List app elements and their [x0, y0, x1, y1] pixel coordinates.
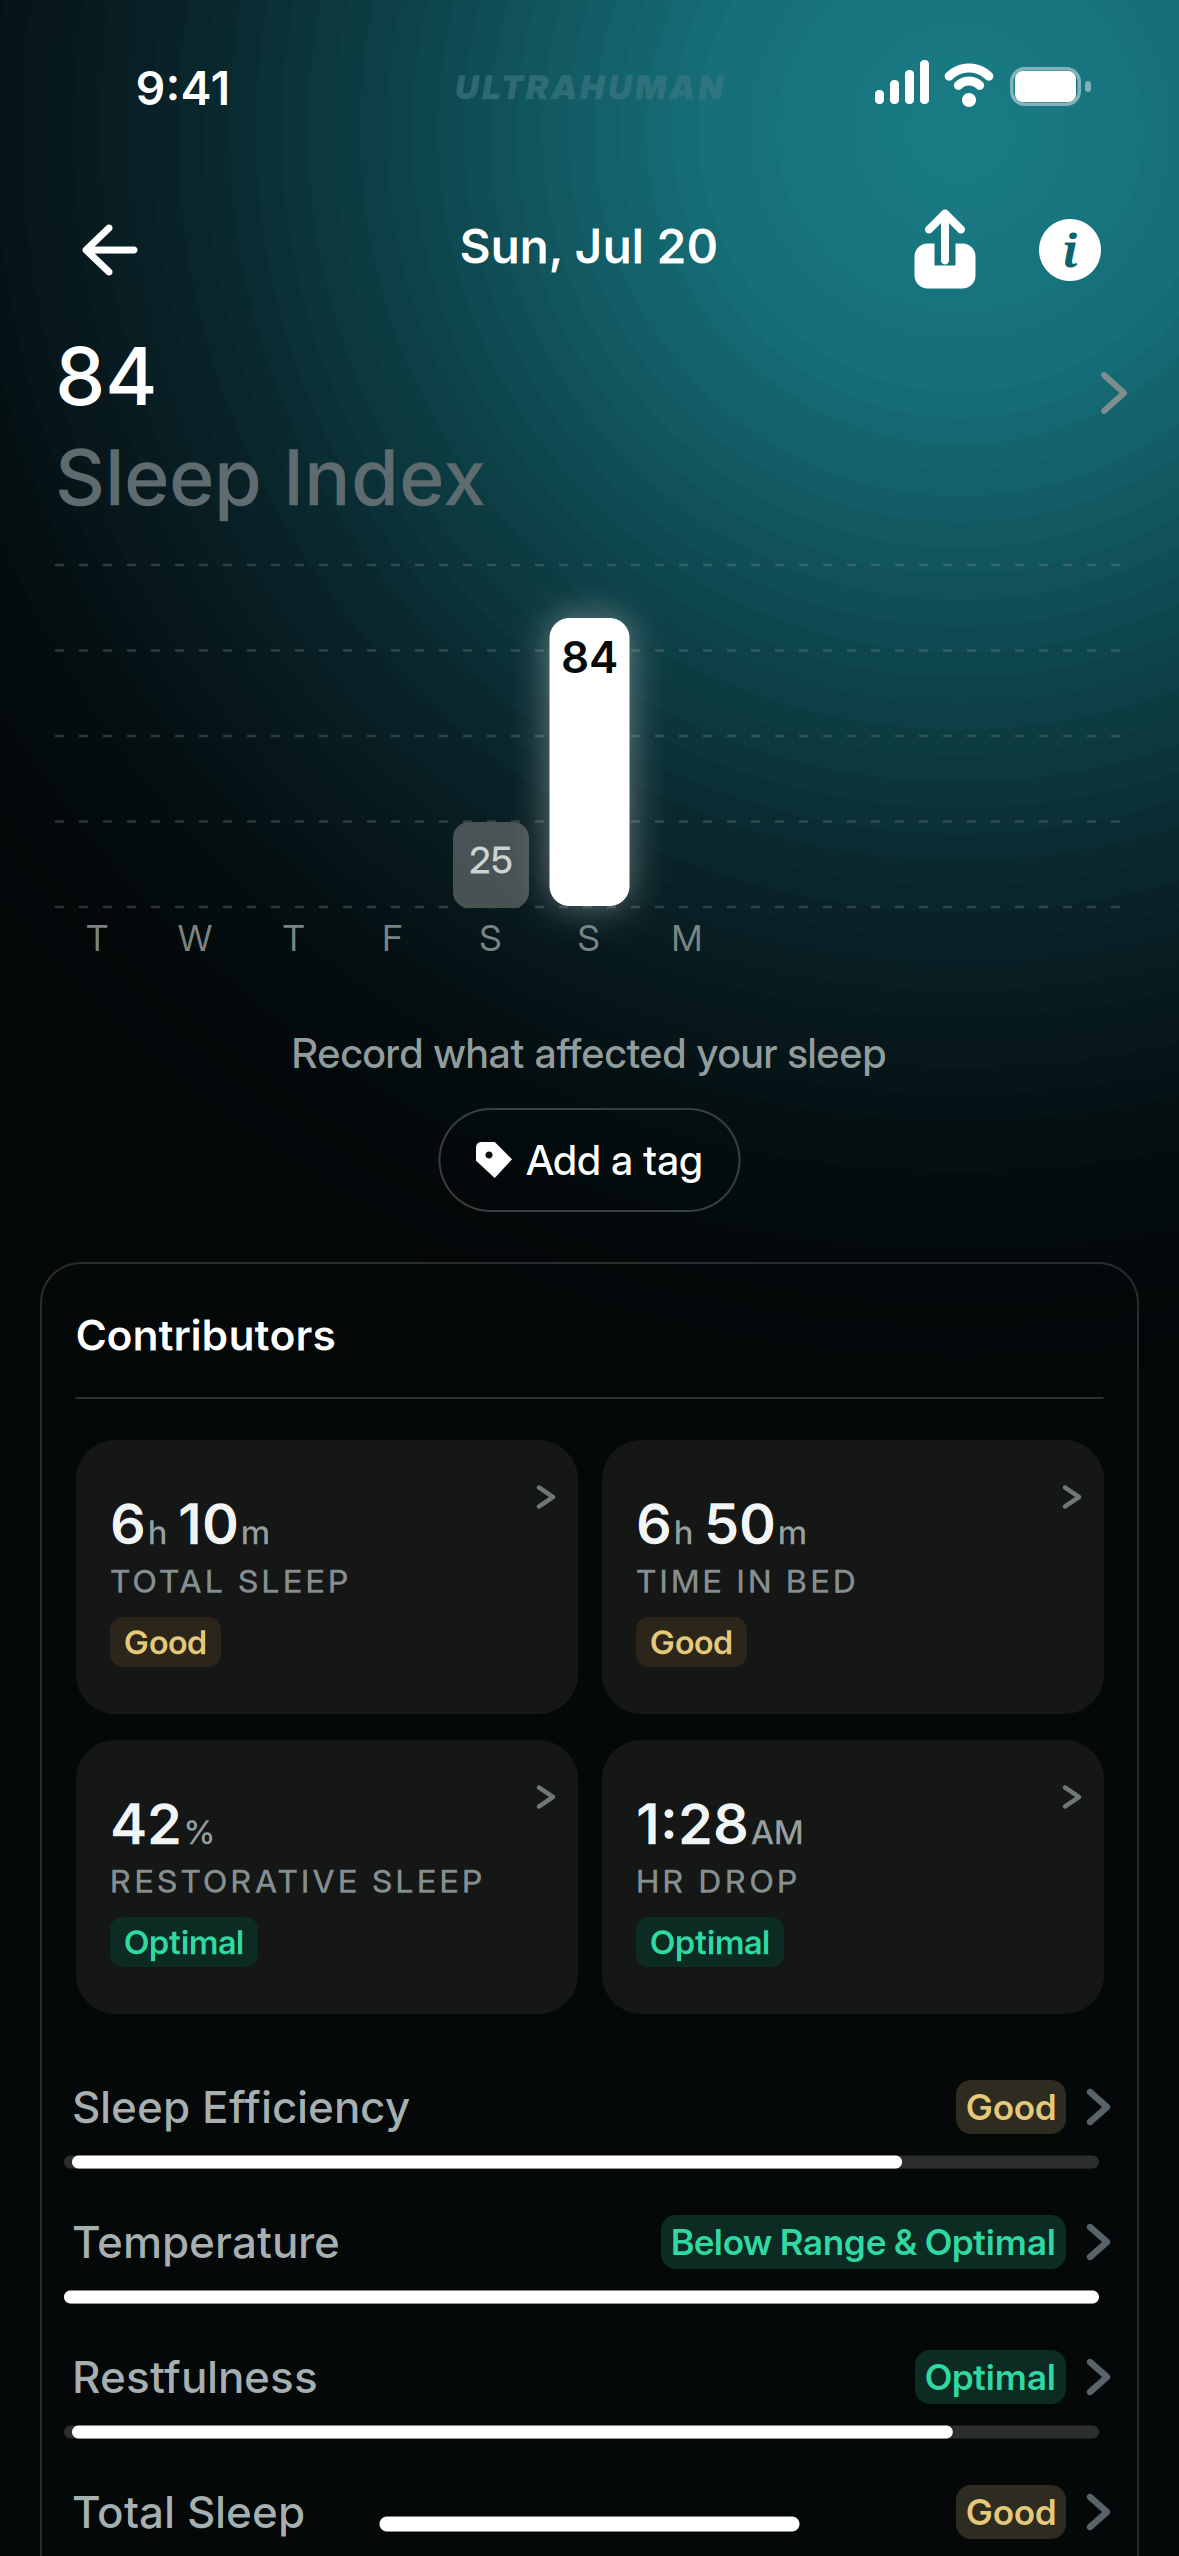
button[interactable]: Restfulness [72, 2337, 1107, 2417]
staticText: S [577, 917, 599, 959]
staticText: Good [966, 2086, 1056, 2128]
button[interactable] [914, 211, 976, 288]
staticText: T [86, 917, 108, 959]
staticText: F [382, 917, 402, 959]
staticText: Good [966, 2491, 1056, 2533]
button[interactable]: 84 [0, 295, 1179, 555]
button[interactable]: 6 [602, 1440, 1104, 1714]
staticText: 84 [561, 631, 618, 683]
button[interactable]: Temperature [72, 2202, 1107, 2282]
staticText: h [148, 1513, 167, 1552]
staticText: 6 [636, 1491, 672, 1557]
staticText: TIME IN BED [636, 1562, 856, 1600]
staticText: % [184, 1813, 215, 1852]
staticText: AM [751, 1813, 804, 1852]
button[interactable]: Sleep Efficiency [72, 2067, 1107, 2147]
staticText: S [479, 917, 501, 959]
staticText: m [778, 1513, 807, 1552]
button[interactable]: Add a tag [438, 1108, 740, 1212]
staticText: Optimal [650, 1922, 770, 1962]
button[interactable]: 6 [76, 1440, 578, 1714]
staticText: Sun, Jul 20 [459, 218, 718, 274]
staticText: Add a tag [526, 1136, 703, 1184]
staticText: Good [650, 1622, 733, 1662]
staticText: Sleep Efficiency [72, 2081, 410, 2133]
staticText: 10 [178, 1491, 239, 1557]
staticText: h [674, 1513, 693, 1552]
staticText: i [1062, 219, 1078, 281]
staticText: Optimal [124, 1922, 244, 1962]
staticText: m [241, 1513, 270, 1552]
staticText: 1:28 [636, 1791, 749, 1857]
staticText: Below Range & Optimal [671, 2221, 1056, 2263]
staticText: 42 [110, 1791, 182, 1857]
staticText: 6 [110, 1491, 146, 1557]
staticText: RESTORATIVE SLEEP [110, 1862, 482, 1900]
staticText: M [671, 917, 702, 959]
staticText: Good [124, 1622, 207, 1662]
staticText: 50 [704, 1491, 776, 1557]
staticText: ULTRAHUMAN [455, 67, 723, 107]
staticText: Restfulness [72, 2351, 318, 2403]
staticText: W [178, 917, 213, 959]
staticText: Contributors [75, 1310, 335, 1360]
staticText: HR DROP [636, 1862, 797, 1900]
staticText: 84 [55, 329, 158, 423]
staticText: Sleep Index [55, 431, 486, 523]
staticText: 25 [469, 838, 513, 882]
staticText: T [283, 917, 305, 959]
button[interactable]: i [1039, 219, 1101, 281]
staticText: Optimal [925, 2356, 1056, 2398]
button[interactable]: 1:28 [602, 1740, 1104, 2014]
staticText: Total Sleep [72, 2486, 305, 2538]
staticText: Record what affected your sleep [291, 1029, 886, 1077]
button[interactable]: 42 [76, 1740, 578, 2014]
staticText: Temperature [72, 2216, 340, 2268]
staticText: 9:41 [135, 60, 230, 116]
staticText: TOTAL SLEEP [110, 1562, 348, 1600]
button[interactable]: Total Sleep [72, 2472, 1107, 2552]
button[interactable] [68, 213, 152, 287]
